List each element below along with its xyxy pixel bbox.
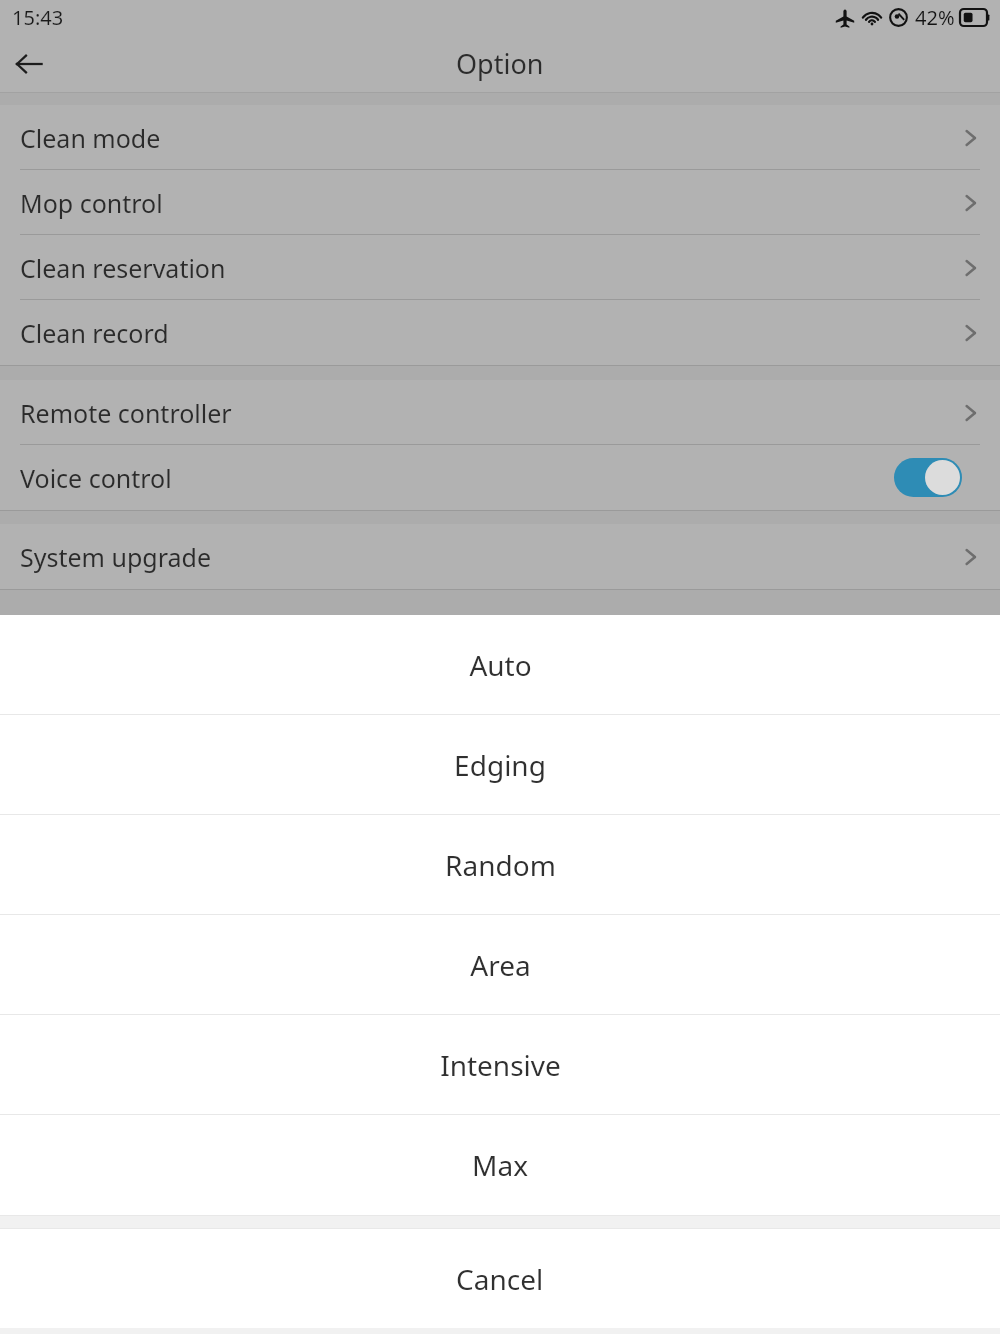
button[interactable]: Max [0,1115,1000,1215]
button[interactable]: Clean record [0,300,1000,365]
button[interactable]: Cancel [0,1229,1000,1328]
button[interactable]: Random [0,815,1000,915]
button[interactable]: Back [0,35,58,92]
staticText: Auto [469,646,532,684]
button[interactable]: Edging [0,715,1000,815]
staticText: System upgrade [20,540,211,574]
staticText: 15:43 [12,4,64,31]
staticText: Max [472,1146,528,1184]
staticText: Area [470,946,531,984]
button[interactable]: Mop control [0,170,1000,235]
staticText: Option [456,45,544,82]
staticText: Clean reservation [20,251,226,285]
staticText: Intensive [440,1046,561,1084]
staticText: Clean mode [20,121,161,155]
button[interactable]: Voice control [0,445,1000,510]
button[interactable]: Remote controller [0,380,1000,445]
staticText: Mop control [20,186,163,220]
staticText: Remote controller [20,396,232,430]
staticText: Random [445,846,556,884]
staticText: Voice control [20,461,172,495]
button[interactable]: Clean reservation [0,235,1000,300]
staticText: Clean record [20,316,169,350]
button[interactable]: Area [0,915,1000,1015]
button[interactable]: Clean mode [0,105,1000,170]
staticText: Cancel [456,1260,544,1298]
button[interactable]: System upgrade [0,524,1000,589]
button[interactable]: Voice control toggle [894,458,962,497]
button[interactable]: Intensive [0,1015,1000,1115]
staticText: Edging [454,746,546,784]
staticText: 42% [915,4,955,31]
button[interactable]: Auto [0,615,1000,715]
